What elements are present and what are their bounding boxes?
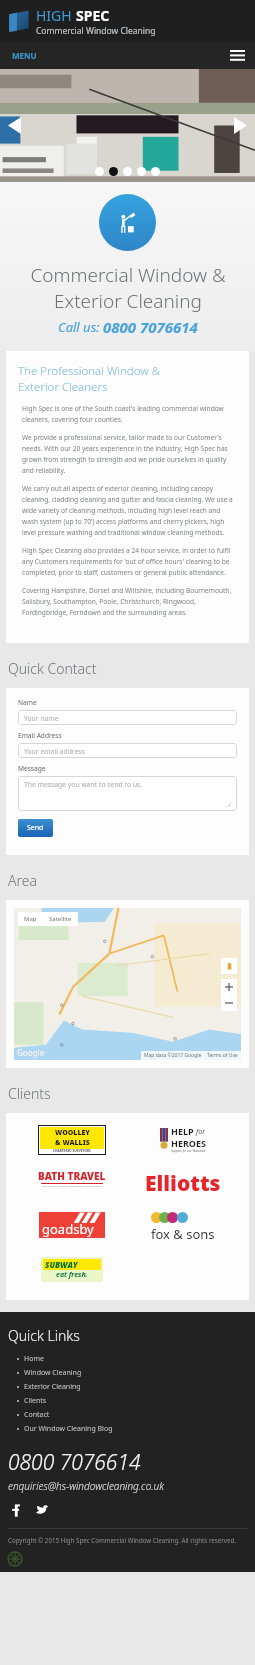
staticText: We carry out all aspects of exterior cle… — [22, 484, 237, 537]
button[interactable]: Our Window Cleaning Blog — [8, 1422, 247, 1436]
staticText: Email Address — [18, 731, 62, 740]
button[interactable]: Next slide — [226, 109, 255, 142]
staticText: fox & sons — [151, 1225, 215, 1243]
staticText: SPEC — [76, 6, 110, 25]
button[interactable]: Send — [18, 819, 53, 837]
staticText: Commercial Window Cleaning — [36, 25, 156, 37]
staticText: The Professional Window & — [18, 363, 160, 379]
button[interactable]: Slide 2 — [109, 167, 118, 176]
staticText: CHARTERED SURVEYORS — [53, 1149, 91, 1153]
staticText: Exterior Cleaning — [54, 288, 202, 314]
button[interactable]: The message you want to send to us. — [18, 776, 237, 811]
staticText: & WALLIS — [55, 1138, 90, 1148]
staticText: Home — [24, 1354, 44, 1364]
staticText: for — [196, 1127, 205, 1137]
staticText: WOOLLEY — [55, 1128, 90, 1138]
staticText: Window Cleaning — [24, 1368, 82, 1378]
button[interactable]: Goadsby — [39, 1212, 105, 1238]
button[interactable]: Slide 5 — [151, 167, 160, 176]
staticText: MENU — [12, 50, 37, 61]
staticText: Map data ©2017 Google — [144, 1052, 202, 1059]
button[interactable]: Exterior Cleaning — [8, 1380, 247, 1394]
button[interactable]: Map — [18, 912, 43, 926]
staticText: Send — [27, 823, 44, 833]
button[interactable]: Facebook — [8, 1502, 24, 1518]
staticText: Covering Hampshire, Dorset and Wiltshire… — [22, 586, 237, 617]
staticText: High Spec is one of the South coast's le… — [22, 404, 237, 424]
staticText: Commercial Window & — [30, 262, 226, 288]
button[interactable]: Help for Heroes — [160, 1125, 206, 1153]
button[interactable]: Your email address — [18, 743, 237, 758]
staticText: Quick Contact — [8, 659, 97, 678]
staticText: HELP — [171, 1125, 196, 1137]
button[interactable]: Open navigation menu — [220, 45, 255, 67]
staticText: We provide a professional service, tailo… — [22, 433, 237, 475]
staticText: Your email address — [24, 747, 85, 754]
staticText: Call us: — [58, 318, 103, 336]
button[interactable]: Window Cleaning — [8, 1366, 247, 1380]
staticText: Terms of Use — [207, 1052, 238, 1059]
staticText: 0800 7076614 — [8, 1448, 141, 1477]
button[interactable]: Slide 1 — [95, 167, 104, 176]
button[interactable]: Woolley & Wallis — [38, 1125, 106, 1155]
staticText: The message you want to send to us. — [24, 780, 143, 789]
button[interactable]: Call us: — [58, 317, 198, 337]
button[interactable]: Zoom in — [221, 979, 237, 995]
staticText: Our Window Cleaning Blog — [24, 1424, 113, 1434]
staticText: enquiries@hs-windowcleaning.co.uk — [8, 1479, 164, 1493]
staticText: SUBWAY — [45, 1259, 78, 1270]
staticText: Name — [18, 698, 37, 707]
staticText: Clients — [24, 1396, 47, 1406]
button[interactable]: Bath Travel — [38, 1169, 106, 1187]
button[interactable]: 0800 7076614 — [8, 1448, 141, 1477]
staticText: Exterior Cleaners — [18, 379, 108, 395]
staticText: Satellite — [49, 915, 72, 923]
staticText: THE SOUTH'S LARGEST INDEPENDENT TRAVEL G… — [42, 1184, 103, 1187]
staticText: Copyright © 2015 High Spec Commercial Wi… — [8, 1536, 236, 1544]
staticText: 0800 7076614 — [103, 317, 198, 337]
staticText: BATH TRAVEL — [38, 1169, 106, 1183]
button[interactable]: Previous slide — [0, 109, 29, 142]
button[interactable]: Slide 3 — [123, 167, 132, 176]
staticText: Map — [24, 915, 37, 923]
button[interactable]: Fox & Sons — [151, 1212, 215, 1243]
staticText: Google — [17, 1047, 45, 1058]
staticText: Quick Links — [8, 1326, 80, 1345]
staticText: Area — [8, 871, 37, 890]
staticText: Elliotts — [145, 1169, 221, 1198]
button[interactable]: Street view — [221, 958, 237, 974]
staticText: Contact — [24, 1410, 50, 1420]
button[interactable]: Map of service area — [14, 908, 241, 1060]
button[interactable]: Satellite — [43, 912, 78, 926]
button[interactable]: Slide 4 — [137, 167, 146, 176]
staticText: goadsby — [42, 1220, 94, 1238]
button[interactable]: Clients — [8, 1394, 247, 1408]
button[interactable]: Contact — [8, 1408, 247, 1422]
button[interactable]: Twitter — [34, 1502, 50, 1518]
staticText: HEROES — [171, 1137, 206, 1149]
staticText: High Spec Cleaning also provides a 24 ho… — [22, 546, 237, 577]
button[interactable]: Zoom out — [221, 995, 237, 1011]
button[interactable]: Subway — [41, 1257, 103, 1282]
button[interactable]: Elliotts — [145, 1169, 221, 1198]
button[interactable]: Home — [8, 1352, 247, 1366]
staticText: HIGH — [36, 6, 76, 25]
button[interactable]: Window cleaning service — [99, 194, 156, 251]
button[interactable]: enquiries@hs-windowcleaning.co.uk — [8, 1479, 164, 1493]
staticText: Clients — [8, 1084, 51, 1103]
staticText: Your name — [24, 714, 59, 721]
staticText: Support for our Wounded — [171, 1149, 206, 1153]
button[interactable]: Your name — [18, 710, 237, 725]
staticText: Message — [18, 764, 46, 773]
button[interactable]: MENU — [0, 44, 49, 67]
staticText: Exterior Cleaning — [24, 1382, 81, 1392]
staticText: eat fresh. — [56, 1270, 88, 1280]
